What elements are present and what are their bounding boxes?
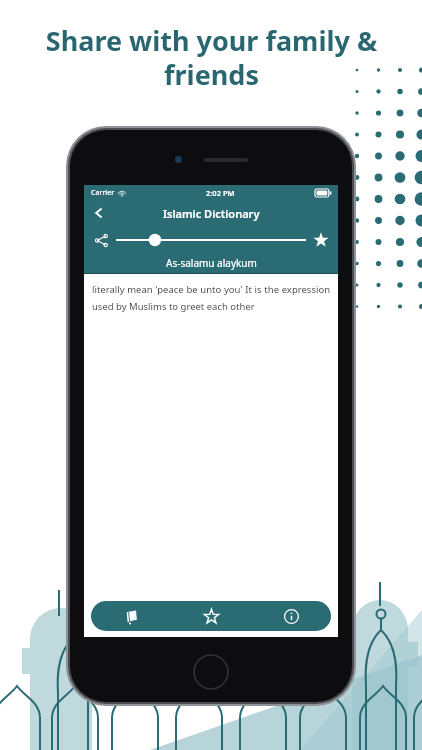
button[interactable]: Favorite <box>310 229 332 251</box>
button[interactable]: Font size slider <box>116 229 306 251</box>
button[interactable]: Back <box>88 202 110 224</box>
button[interactable]: Dictionary <box>91 601 171 631</box>
staticText: literally mean 'peace be unto you' It is… <box>92 283 330 312</box>
staticText: Carrier <box>91 188 115 198</box>
staticText: 2:02 PM <box>206 188 235 198</box>
button[interactable]: Info <box>251 601 331 631</box>
button[interactable]: Home <box>193 654 229 690</box>
button[interactable]: Favorites <box>171 601 251 631</box>
staticText: Islamic Dictionary <box>163 206 260 221</box>
button[interactable]: Share <box>90 229 112 251</box>
staticText: As-salamu alaykum <box>166 256 257 270</box>
staticText: Share with your family & friends <box>30 22 393 93</box>
